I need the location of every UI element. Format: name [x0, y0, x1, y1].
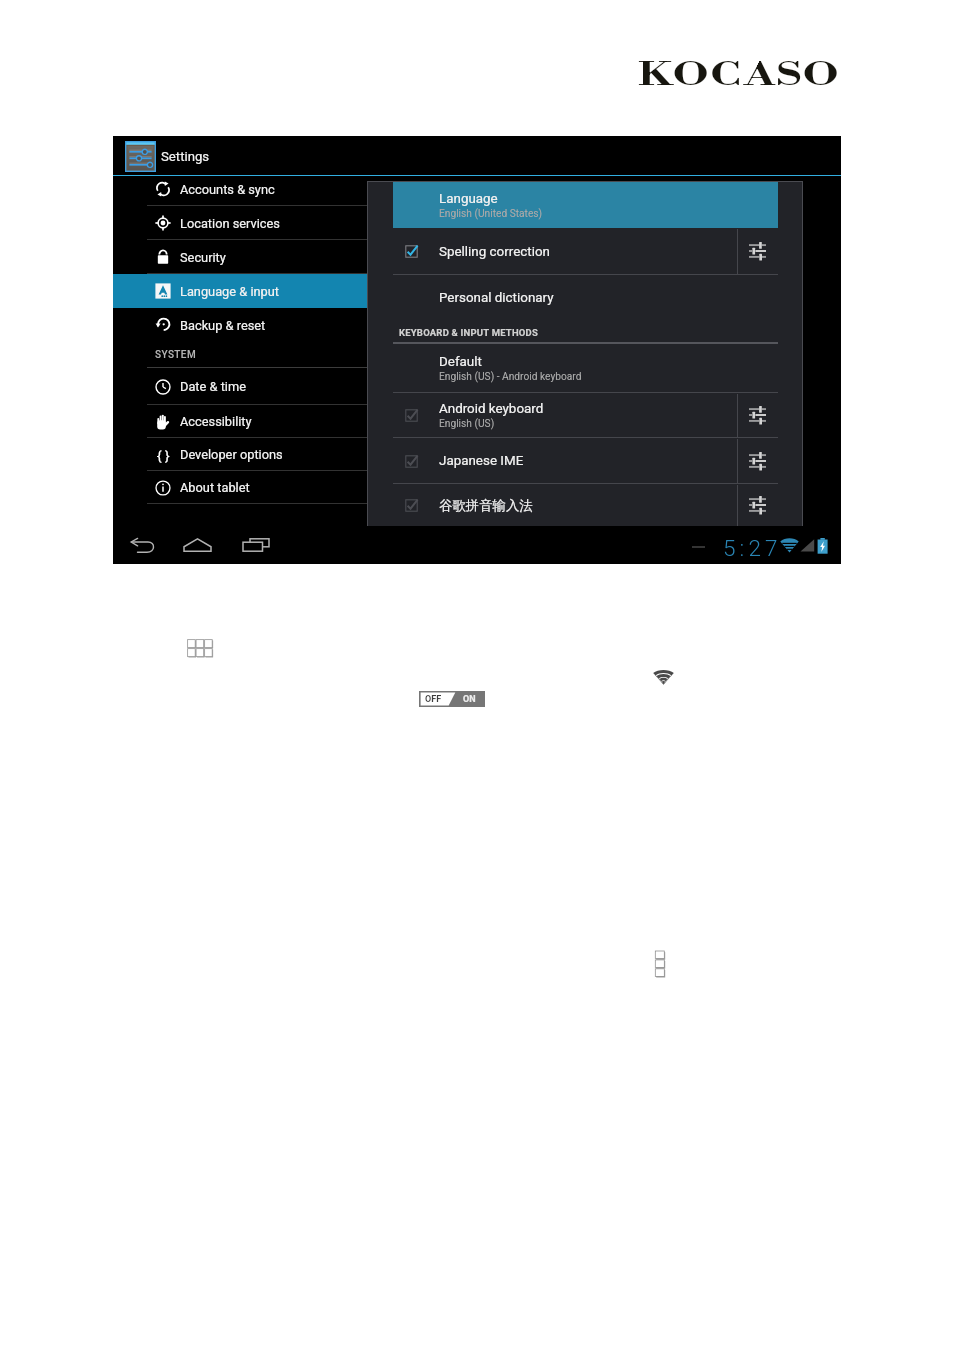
button[interactable]: Back	[123, 528, 163, 562]
staticText: English (United States)	[439, 208, 543, 220]
staticText: Developer options	[180, 447, 283, 462]
staticText: { }	[157, 447, 170, 463]
staticText: Language	[439, 191, 498, 207]
button[interactable]: Accounts & sync	[113, 172, 367, 206]
staticText: KEYBOARD & INPUT METHODS	[399, 327, 538, 338]
staticText: Japanese IME	[439, 453, 524, 469]
button[interactable]: About tablet	[113, 471, 367, 504]
staticText: OFF	[425, 694, 442, 705]
staticText: English (US)	[439, 418, 495, 430]
staticText: KOCASO	[638, 56, 841, 95]
button[interactable]: Language	[393, 182, 778, 228]
staticText: Security	[180, 250, 226, 265]
staticText: Settings	[161, 149, 210, 164]
button[interactable]: Personal dictionary	[393, 275, 778, 320]
staticText: Language & input	[180, 284, 280, 299]
button[interactable]: Input method settings	[737, 438, 778, 484]
staticText: Accessibility	[180, 414, 252, 429]
button[interactable]: OFF	[419, 691, 485, 707]
button[interactable]: Language & input	[113, 274, 367, 308]
button[interactable]: Default	[393, 344, 778, 393]
button[interactable]: Security	[113, 240, 367, 274]
staticText: English (US) - Android keyboard	[439, 371, 582, 383]
staticText: Accounts & sync	[180, 182, 275, 197]
button[interactable]: Japanese IME	[393, 438, 778, 484]
staticText: Location services	[180, 216, 280, 231]
staticText: 5:27	[723, 535, 782, 561]
staticText: SYSTEM	[155, 349, 197, 361]
staticText: Backup & reset	[180, 318, 266, 333]
staticText: 谷歌拼音输入法	[439, 497, 533, 514]
button[interactable]: { }	[113, 438, 367, 471]
button[interactable]: Backup & reset	[113, 308, 367, 342]
button[interactable]: Input method settings	[737, 484, 778, 526]
staticText: Personal dictionary	[439, 290, 554, 306]
button[interactable]: Input method settings	[737, 393, 778, 438]
staticText: ON	[463, 694, 476, 705]
staticText: Default	[439, 354, 482, 370]
button[interactable]: 谷歌拼音输入法	[393, 484, 778, 526]
button[interactable]: Apps	[187, 639, 213, 658]
button[interactable]: Accessibility	[113, 405, 367, 438]
staticText: Spelling correction	[439, 244, 550, 260]
button[interactable]: Home	[177, 528, 217, 562]
button[interactable]: Location services	[113, 206, 367, 240]
staticText: Date & time	[180, 379, 246, 394]
button[interactable]: Android keyboard	[393, 393, 778, 438]
button[interactable]: Date & time	[113, 368, 367, 405]
button[interactable]: Recent apps	[236, 528, 276, 562]
button[interactable]: Spelling correction	[393, 228, 778, 275]
staticText: Android keyboard	[439, 401, 544, 417]
staticText: About tablet	[180, 480, 250, 495]
button[interactable]: Input method settings	[737, 228, 778, 275]
